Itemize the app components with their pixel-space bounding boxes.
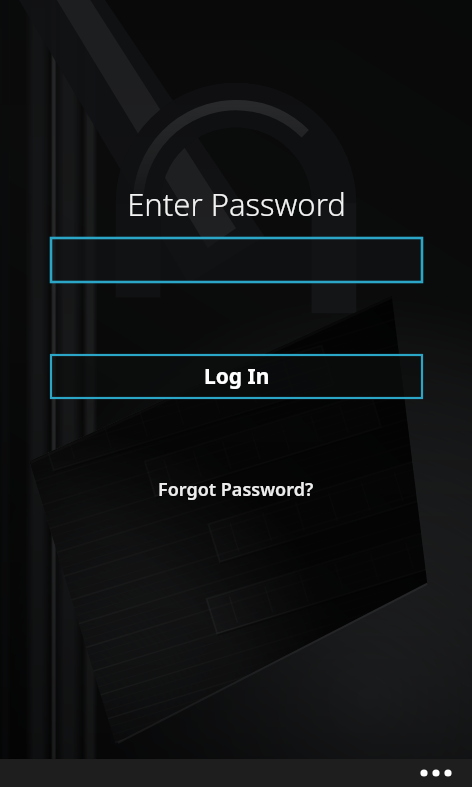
staticText: Forgot Password? xyxy=(158,477,314,502)
button[interactable]: Forgot Password? xyxy=(136,472,336,506)
button[interactable]: More options xyxy=(408,759,464,787)
staticText: Log In xyxy=(204,362,270,391)
button[interactable]: Password field xyxy=(51,238,422,282)
staticText: Enter Password xyxy=(127,183,346,225)
button[interactable]: Log In xyxy=(51,355,422,398)
